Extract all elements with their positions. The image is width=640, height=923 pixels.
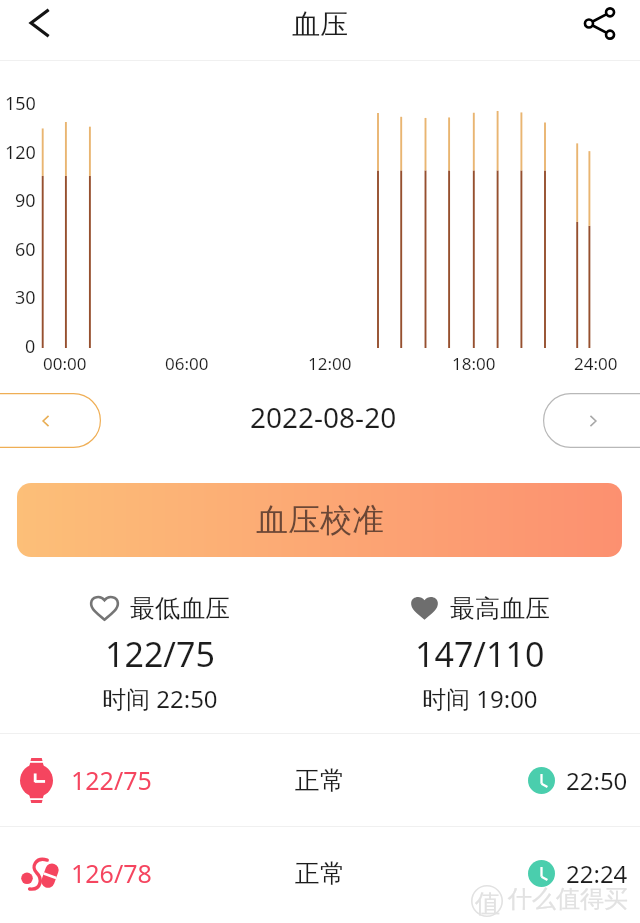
staticText: 06:00	[165, 352, 209, 375]
staticText: 120	[5, 140, 36, 165]
staticText: 30	[15, 285, 36, 310]
staticText: 血压校准	[256, 500, 384, 540]
button[interactable]: 血压校准	[17, 483, 622, 557]
button[interactable]: Back	[8, 1, 66, 59]
staticText: 时间 19:00	[422, 682, 538, 715]
staticText: 最高血压	[450, 593, 550, 624]
staticText: 00:00	[43, 352, 87, 375]
staticText: 150	[5, 91, 36, 116]
staticText: 126/78	[71, 856, 152, 890]
staticText: 什么值得买	[508, 884, 628, 914]
staticText: 24:00	[574, 352, 618, 375]
staticText: 时间 22:50	[102, 682, 218, 715]
staticText: 最低血压	[130, 593, 230, 624]
staticText: 12:00	[308, 352, 352, 375]
staticText: 22:24	[566, 857, 628, 890]
button[interactable]: 122/75	[0, 734, 640, 826]
staticText: 90	[15, 188, 36, 213]
staticText: 正常	[295, 765, 345, 796]
staticText: 18:00	[452, 352, 496, 375]
button[interactable]: Share	[570, 1, 628, 59]
staticText: 122/75	[105, 631, 215, 677]
staticText: 正常	[295, 858, 345, 889]
staticText: 2022-08-20	[250, 398, 397, 436]
button[interactable]: 126/78	[0, 827, 640, 919]
staticText: 0	[25, 334, 36, 359]
staticText: 60	[15, 237, 36, 262]
button[interactable]: Previous day	[0, 393, 101, 448]
staticText: 血压	[292, 7, 348, 42]
staticText: 122/75	[71, 763, 152, 797]
staticText: 值	[475, 888, 500, 919]
button[interactable]: Next day	[543, 393, 640, 448]
staticText: 22:50	[566, 764, 628, 797]
staticText: 147/110	[415, 631, 545, 677]
